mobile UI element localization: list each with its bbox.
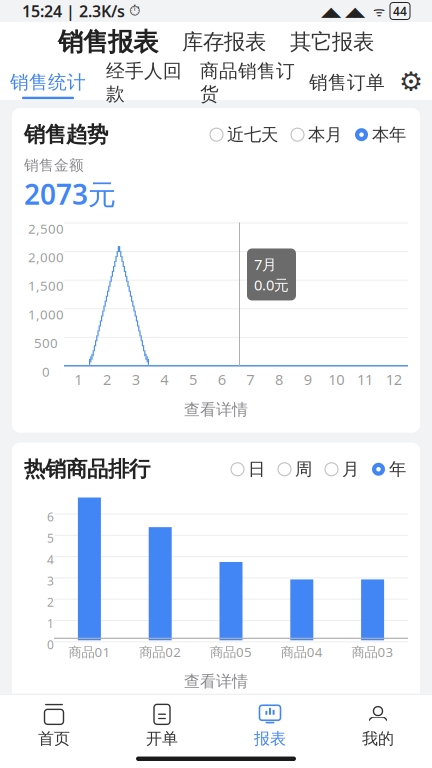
staticText: 4 (47, 551, 54, 567)
staticText: 2073元 (24, 175, 116, 212)
staticText: 10 (328, 369, 344, 389)
staticText: 年 (389, 730, 406, 752)
button[interactable]: 近七天 (208, 121, 280, 148)
staticText: 月 (342, 459, 359, 480)
staticText: 销售金额 (24, 156, 84, 174)
button[interactable]: 查看详情 (24, 397, 408, 423)
button[interactable]: 本月 (289, 121, 344, 148)
button[interactable]: 开单 (108, 695, 216, 754)
button[interactable]: 本年 (353, 121, 408, 148)
staticText: 年 (389, 459, 406, 480)
staticText: 我的 (362, 729, 394, 748)
staticText: 0 (47, 637, 54, 653)
staticText: 1 (74, 369, 82, 389)
staticText: 开单 (146, 729, 178, 748)
staticText: ◢◣ ◢◣ ᯤ (321, 2, 385, 20)
staticText: 商品02 (139, 643, 181, 661)
staticText: 0.0元 (254, 275, 289, 294)
staticText: 报表 (254, 729, 286, 748)
staticText: 销售报表 (58, 26, 158, 57)
staticText: 商品04 (281, 643, 323, 661)
staticText: 8 (275, 369, 283, 389)
staticText: 2 (103, 369, 111, 389)
button[interactable]: 销售报表 (46, 20, 170, 63)
staticText: 本月 (308, 124, 342, 145)
staticText: 7月 (254, 254, 277, 274)
staticText: 12 (386, 369, 402, 389)
staticText: 1,000 (28, 305, 64, 323)
button[interactable]: 查看详情 (24, 669, 408, 694)
staticText: 商品销售订货 (200, 60, 295, 105)
staticText: 销售订单 (309, 71, 385, 94)
staticText: 11 (357, 369, 373, 389)
staticText: 经手人回款 (106, 60, 182, 105)
button[interactable]: 年 (370, 727, 408, 755)
button[interactable]: 库存报表 (170, 23, 278, 61)
staticText: 热销商品排行 (24, 456, 150, 482)
button[interactable]: 销售统计 (0, 63, 96, 99)
staticText: 6 (218, 369, 226, 389)
button[interactable]: 周 (276, 727, 314, 755)
staticText: 5 (189, 369, 197, 389)
button[interactable]: 商品销售订货 (192, 52, 303, 110)
staticText: 44 (393, 3, 407, 19)
staticText: 销售趋势 (24, 121, 108, 148)
staticText: 库存报表 (182, 29, 266, 55)
staticText: 日 (248, 730, 265, 752)
staticText: 7 (246, 369, 254, 389)
staticText: ⏱ (125, 4, 140, 18)
staticText: 本年 (372, 124, 406, 145)
staticText: 1,500 (28, 277, 64, 294)
staticText: 5 (47, 530, 54, 546)
button[interactable]: 日 (229, 456, 267, 483)
staticText: 2,500 (28, 220, 64, 237)
staticText: 查看详情 (184, 400, 248, 420)
staticText: 9 (304, 369, 312, 389)
staticText: 2,000 (28, 248, 64, 266)
button[interactable]: 日 (229, 727, 267, 755)
button[interactable]: 周 (276, 456, 314, 483)
button[interactable]: 首页 (0, 695, 108, 754)
staticText: 销售统计 (10, 71, 86, 94)
button[interactable]: 其它报表 (278, 23, 386, 61)
staticText: 500 (34, 334, 58, 352)
staticText: 周 (295, 459, 312, 480)
staticText: 查看详情 (184, 672, 248, 691)
staticText: 商品03 (352, 643, 394, 661)
staticText: 商品05 (210, 643, 252, 661)
staticText: 1 (47, 615, 54, 631)
button[interactable]: 经手人回款 (96, 52, 192, 110)
staticText: 近七天 (227, 124, 278, 145)
button[interactable]: 年 (370, 456, 408, 483)
staticText: ⚙ (399, 66, 423, 97)
staticText: 日 (248, 459, 265, 480)
staticText: 活跃客户排行 (24, 728, 150, 754)
staticText: 2 (47, 594, 54, 610)
button[interactable]: 月 (323, 456, 361, 483)
staticText: 首页 (38, 729, 70, 748)
staticText: 4 (160, 369, 168, 389)
staticText: 15:24 | 2.3K/s (22, 0, 125, 22)
staticText: 0 (42, 363, 50, 380)
staticText: 其它报表 (290, 29, 374, 55)
button[interactable]: 我的 (324, 695, 432, 754)
staticText: 3 (132, 369, 140, 389)
button[interactable]: 报表 (216, 695, 324, 754)
button[interactable]: 销售订单 (303, 63, 391, 99)
staticText: 商品01 (68, 643, 110, 661)
button[interactable]: 设置 (391, 60, 431, 102)
staticText: 6 (47, 509, 54, 525)
staticText: 3 (47, 573, 54, 589)
